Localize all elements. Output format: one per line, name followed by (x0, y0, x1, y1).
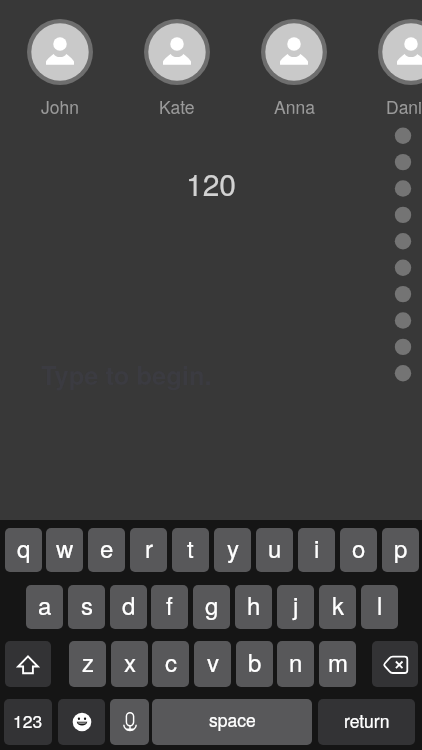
button[interactable]: f (151, 585, 188, 629)
button[interactable]: k (319, 585, 356, 629)
staticText: u (268, 530, 282, 564)
button[interactable]: Emoji (58, 699, 105, 745)
staticText: a (38, 587, 52, 621)
button[interactable]: m (319, 641, 356, 687)
staticText: v (207, 644, 219, 678)
button[interactable]: space (152, 699, 312, 745)
button[interactable]: g (193, 585, 230, 629)
button[interactable]: w (46, 528, 83, 572)
button[interactable]: d (110, 585, 147, 629)
staticText: 123 (13, 708, 43, 733)
staticText: d (122, 587, 136, 621)
button[interactable]: return (318, 699, 415, 745)
staticText: f (166, 587, 173, 621)
staticText: b (248, 644, 262, 678)
button[interactable]: 123 (4, 699, 52, 745)
button[interactable]: n (277, 641, 314, 687)
button[interactable]: Voice input (110, 699, 149, 745)
staticText: l (377, 587, 383, 621)
staticText: r (145, 530, 153, 564)
staticText: h (247, 587, 261, 621)
staticText: q (17, 530, 31, 564)
button[interactable]: z (69, 641, 106, 687)
staticText: x (124, 644, 136, 678)
staticText: g (205, 587, 219, 621)
button[interactable]: b (236, 641, 273, 687)
button[interactable]: Anna (236, 19, 352, 119)
button[interactable]: r (130, 528, 167, 572)
staticText: m (328, 644, 348, 678)
button[interactable]: Kate (119, 19, 235, 119)
staticText: n (289, 644, 303, 678)
staticText: z (82, 644, 94, 678)
staticText: e (100, 530, 114, 564)
staticText: Daniel (386, 94, 422, 119)
button[interactable]: j (277, 585, 314, 629)
staticText: t (187, 530, 194, 564)
staticText: y (227, 530, 239, 564)
button[interactable]: a (26, 585, 63, 629)
staticText: o (352, 530, 366, 564)
staticText: c (165, 644, 177, 678)
button[interactable]: v (194, 641, 231, 687)
button[interactable]: s (68, 585, 105, 629)
button[interactable]: t (172, 528, 209, 572)
button[interactable]: q (5, 528, 42, 572)
button[interactable]: Shift (5, 641, 51, 687)
button[interactable]: e (88, 528, 125, 572)
button[interactable]: John (2, 19, 118, 119)
button[interactable]: o (340, 528, 377, 572)
button[interactable]: c (152, 641, 189, 687)
staticText: Kate (159, 94, 195, 119)
staticText: w (56, 530, 74, 564)
button[interactable]: Backspace (372, 641, 418, 687)
button[interactable]: i (298, 528, 335, 572)
staticText: p (394, 530, 408, 564)
staticText: k (332, 587, 344, 621)
staticText: return (344, 708, 390, 733)
staticText: i (314, 530, 320, 564)
button[interactable]: l (361, 585, 398, 629)
staticText: Anna (274, 94, 315, 119)
button[interactable]: Daniel (353, 19, 422, 119)
button[interactable]: u (256, 528, 293, 572)
staticText: John (41, 94, 79, 119)
staticText: j (293, 587, 299, 621)
button[interactable]: y (214, 528, 251, 572)
staticText: space (209, 707, 256, 732)
staticText: 120 (186, 162, 237, 205)
button[interactable]: p (382, 528, 419, 572)
button[interactable]: x (111, 641, 148, 687)
staticText: s (81, 587, 93, 621)
staticText: Type to begin. (41, 356, 212, 393)
button[interactable]: h (235, 585, 272, 629)
